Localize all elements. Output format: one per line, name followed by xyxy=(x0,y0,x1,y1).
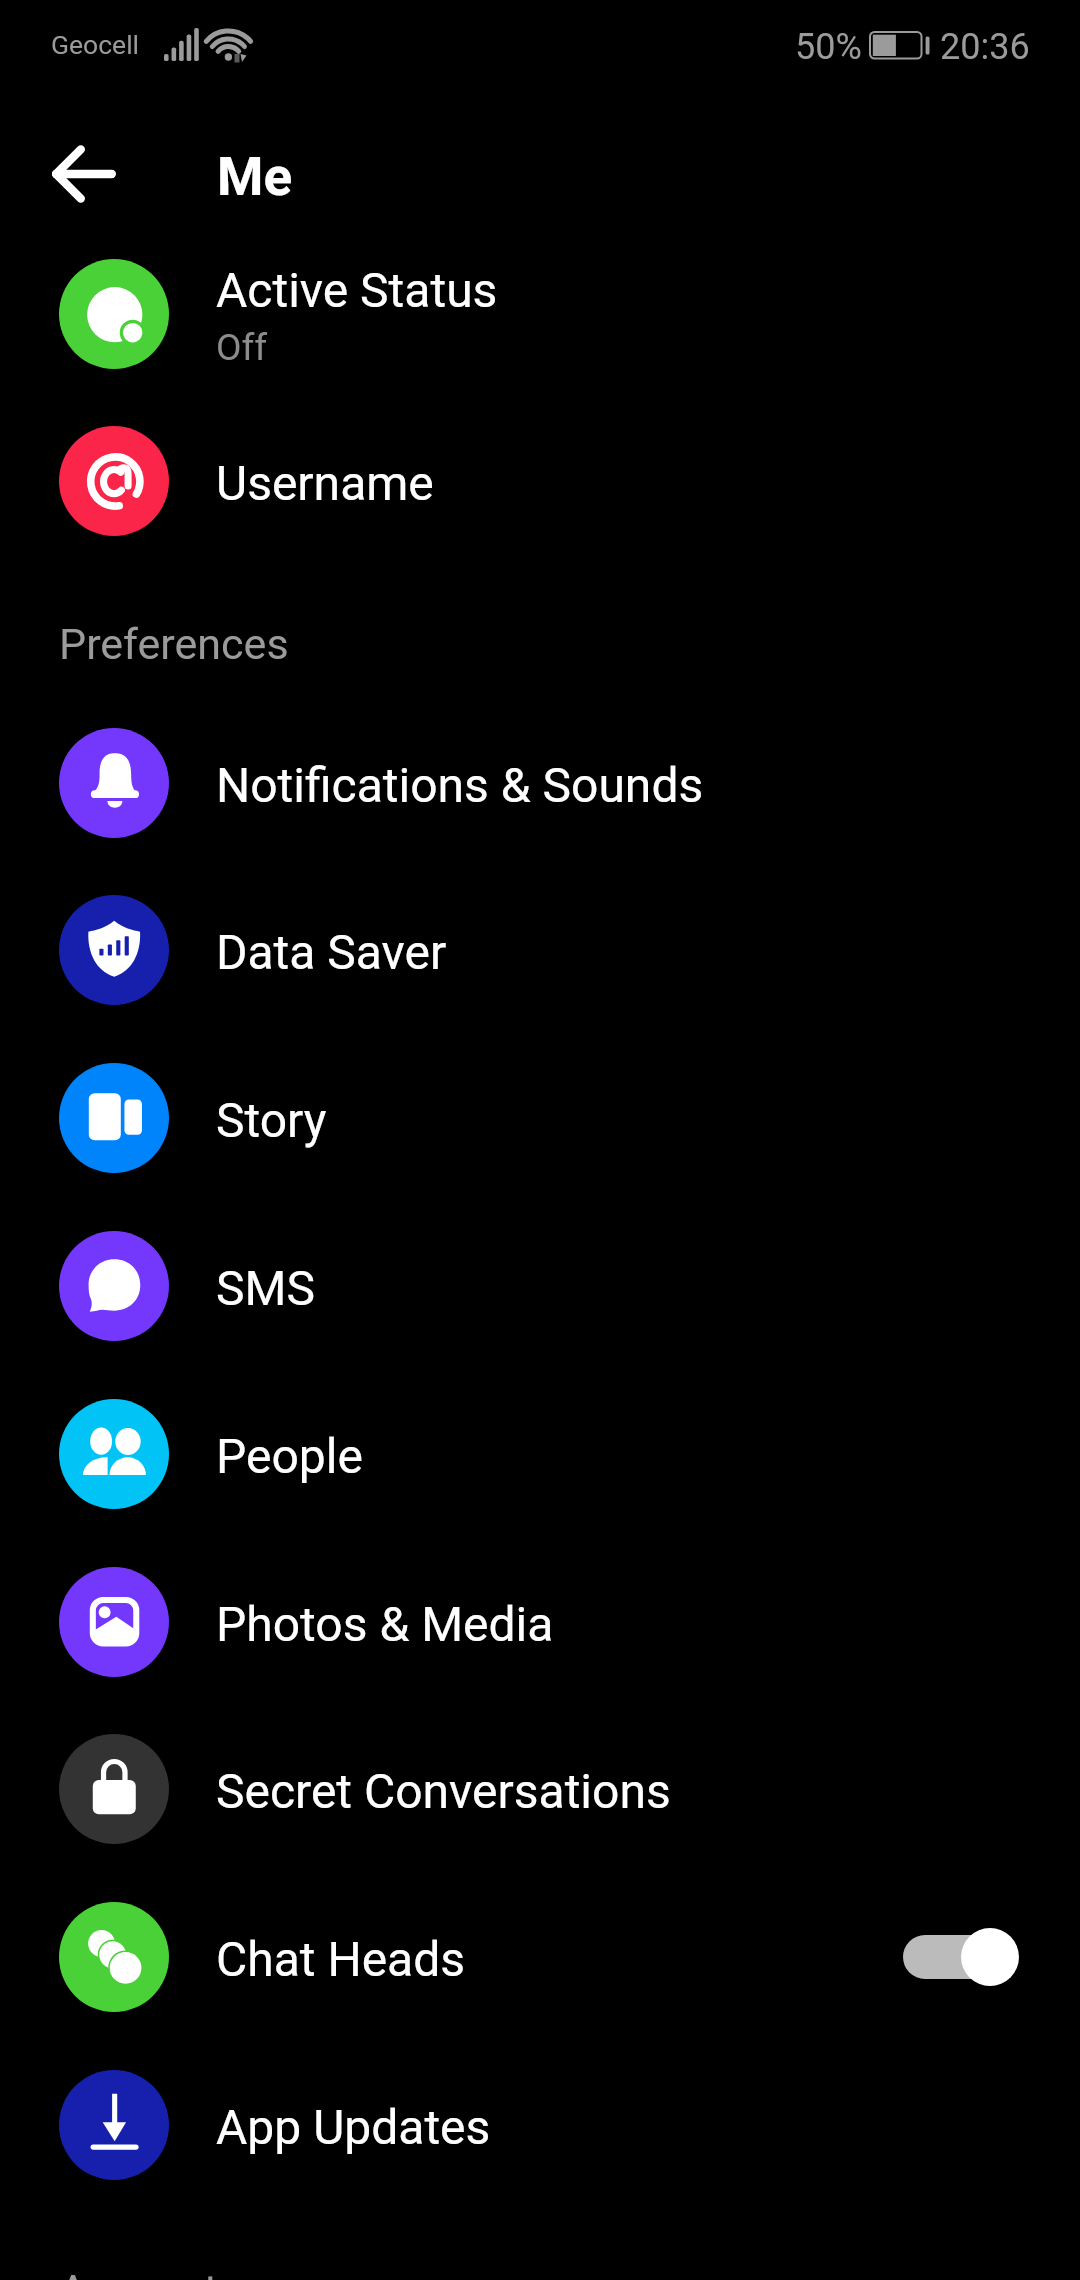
staticText: Username xyxy=(216,455,434,511)
staticText: Geocell xyxy=(51,29,140,60)
staticText: Active Status xyxy=(216,262,498,318)
staticText: 50% xyxy=(795,26,862,68)
button[interactable]: Data Saver xyxy=(0,866,1080,1034)
button[interactable]: Photos & Media xyxy=(0,1538,1080,1706)
button[interactable]: Username xyxy=(0,397,1080,565)
staticText: People xyxy=(216,1428,363,1484)
staticText: 20:36 xyxy=(940,26,1030,68)
staticText: Photos & Media xyxy=(216,1596,554,1652)
button[interactable]: Toggle Chat Heads xyxy=(890,1922,1020,1992)
staticText: Account xyxy=(59,2265,219,2280)
staticText: Story xyxy=(216,1092,327,1148)
staticText: SMS xyxy=(216,1260,315,1316)
button[interactable]: Story xyxy=(0,1034,1080,1202)
button[interactable]: Notifications & Sounds xyxy=(0,699,1080,867)
staticText: Me xyxy=(217,146,293,208)
staticText: Off xyxy=(216,326,268,369)
staticText: Preferences xyxy=(59,619,289,669)
button[interactable]: App Updates xyxy=(0,2041,1080,2209)
staticText: App Updates xyxy=(216,2099,491,2155)
staticText: Chat Heads xyxy=(216,1931,466,1987)
button[interactable]: SMS xyxy=(0,1202,1080,1370)
button[interactable]: Secret Conversations xyxy=(0,1705,1080,1873)
staticText: Data Saver xyxy=(216,924,447,980)
button[interactable]: Active Status xyxy=(0,230,1080,398)
button[interactable]: Back xyxy=(24,114,144,234)
staticText: Notifications & Sounds xyxy=(216,757,704,813)
button[interactable]: Chat Heads xyxy=(0,1873,1080,2041)
button[interactable]: People xyxy=(0,1370,1080,1538)
staticText: Secret Conversations xyxy=(216,1763,671,1819)
